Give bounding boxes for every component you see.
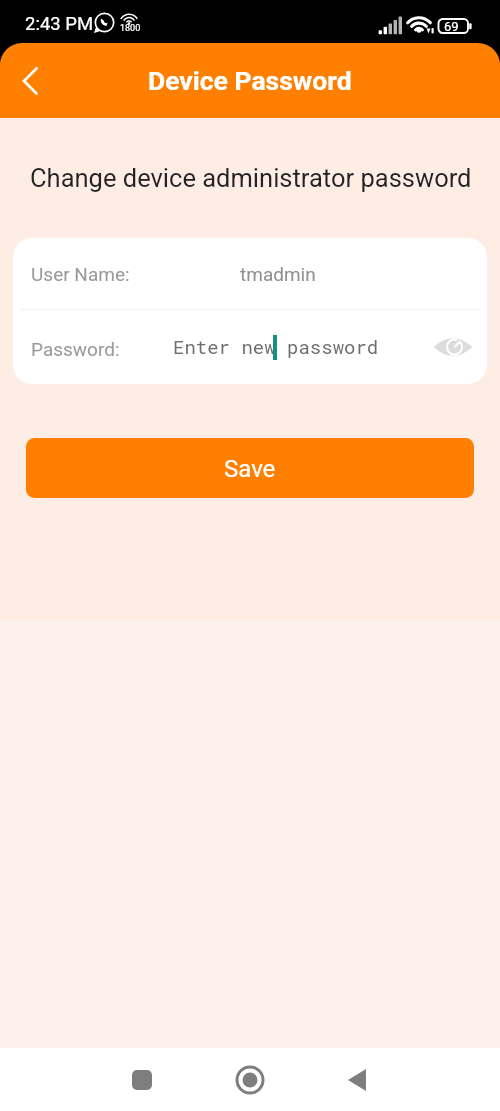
- button[interactable]: User Name:: [13, 238, 487, 309]
- staticText: Enter new password: [173, 334, 379, 359]
- button[interactable]: Home: [220, 1048, 280, 1111]
- button[interactable]: Enter new password: [173, 334, 379, 359]
- button[interactable]: Recent apps: [112, 1048, 172, 1111]
- staticText: Password:: [31, 338, 120, 360]
- staticText: Save: [224, 455, 276, 483]
- staticText: 2:43 PM: [25, 13, 94, 35]
- button[interactable]: Password:: [13, 310, 487, 384]
- staticText: 69: [444, 19, 459, 34]
- staticText: Device Password: [148, 65, 352, 96]
- staticText: 1800: [120, 23, 141, 34]
- button[interactable]: Save: [26, 438, 474, 498]
- button[interactable]: Back: [8, 59, 52, 103]
- button[interactable]: Back: [327, 1048, 387, 1111]
- staticText: User Name:: [31, 263, 130, 285]
- staticText: Change device administrator password: [30, 163, 500, 193]
- staticText: tmadmin: [240, 263, 316, 285]
- button[interactable]: Show password: [431, 325, 475, 369]
